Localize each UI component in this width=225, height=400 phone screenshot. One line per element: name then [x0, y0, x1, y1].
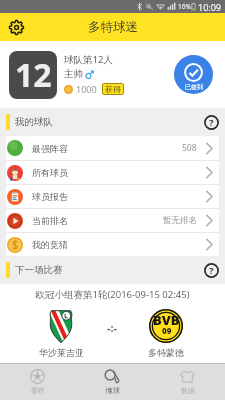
button[interactable]: 获得: [102, 83, 124, 95]
staticText: 华沙莱吉亚: [39, 347, 84, 358]
staticText: 已签到: [185, 83, 203, 91]
button[interactable]: Settings: [4, 15, 28, 39]
staticText: ?: [209, 264, 214, 277]
staticText: 10:09: [198, 1, 222, 13]
staticText: 508: [182, 142, 197, 154]
staticText: 球队第12人: [64, 53, 113, 66]
button[interactable]: 最强阵容: [6, 136, 219, 160]
staticText: 下一场比赛: [15, 264, 63, 276]
staticText: ?: [209, 116, 214, 129]
button[interactable]: Help: [202, 113, 220, 131]
button[interactable]: Help: [202, 261, 220, 279]
button[interactable]: 所有球员: [6, 161, 219, 184]
staticText: 我的竞猜: [32, 239, 68, 250]
button[interactable]: 赛程: [0, 364, 75, 400]
staticText: 数据: [181, 386, 195, 395]
button[interactable]: 球员报告: [6, 185, 219, 208]
staticText: -:-: [107, 320, 118, 335]
staticText: 16%: [178, 2, 191, 11]
staticText: 多特蒙德: [148, 347, 184, 358]
button[interactable]: 数据: [150, 364, 225, 400]
staticText: 最强阵容: [32, 143, 68, 154]
staticText: 1000: [76, 83, 97, 95]
staticText: 暂无排名: [163, 215, 197, 226]
staticText: 我的球队: [15, 116, 53, 128]
button[interactable]: 已签到: [174, 55, 213, 94]
staticText: 多特球迷: [88, 19, 138, 35]
staticText: 赛程: [31, 386, 45, 395]
staticText: 所有球员: [32, 167, 68, 178]
staticText: 懂球: [106, 386, 120, 395]
staticText: BVB: [153, 311, 180, 329]
staticText: 球员报告: [32, 191, 68, 202]
staticText: 主帅: [64, 68, 83, 80]
staticText: 09: [162, 325, 172, 336]
staticText: 欧冠小组赛第1轮(2016-09-15 02:45): [0, 288, 225, 301]
button[interactable]: 当前排名: [6, 209, 219, 232]
button[interactable]: 我的竞猜: [6, 233, 219, 256]
staticText: 获得: [105, 84, 121, 94]
button[interactable]: Avatar: [9, 51, 57, 99]
staticText: 当前排名: [32, 215, 68, 226]
button[interactable]: 懂球: [75, 364, 150, 400]
staticText: 12: [15, 53, 52, 97]
